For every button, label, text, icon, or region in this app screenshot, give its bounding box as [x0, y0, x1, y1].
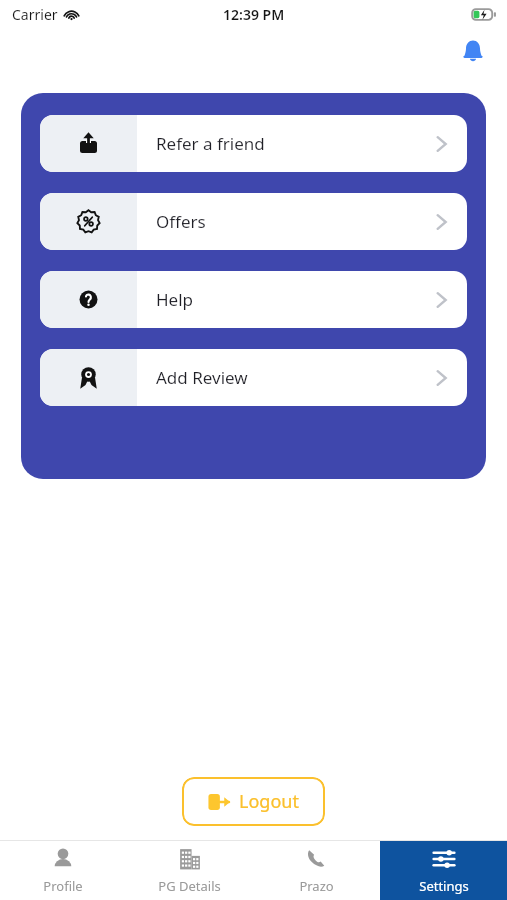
- staticText: Add Review: [156, 366, 436, 389]
- staticText: PG Details: [158, 877, 221, 895]
- button[interactable]: Logout: [182, 777, 325, 826]
- staticText: Settings: [419, 877, 469, 895]
- staticText: Logout: [239, 789, 299, 814]
- staticText: 12:39 PM: [223, 5, 285, 24]
- staticText: Help: [156, 288, 436, 311]
- button[interactable]: Offers: [40, 193, 467, 250]
- staticText: Prazo: [299, 877, 334, 895]
- button[interactable]: Settings: [380, 841, 507, 900]
- button[interactable]: Notifications: [455, 33, 491, 69]
- button[interactable]: Refer a friend: [40, 115, 467, 172]
- button[interactable]: Help: [40, 271, 467, 328]
- button[interactable]: Add Review: [40, 349, 467, 406]
- staticText: Carrier: [12, 5, 58, 24]
- staticText: Profile: [43, 877, 83, 895]
- button[interactable]: Prazo: [253, 841, 380, 900]
- button[interactable]: Profile: [0, 841, 126, 900]
- staticText: Refer a friend: [156, 132, 436, 155]
- staticText: Offers: [156, 210, 436, 233]
- button[interactable]: PG Details: [126, 841, 253, 900]
